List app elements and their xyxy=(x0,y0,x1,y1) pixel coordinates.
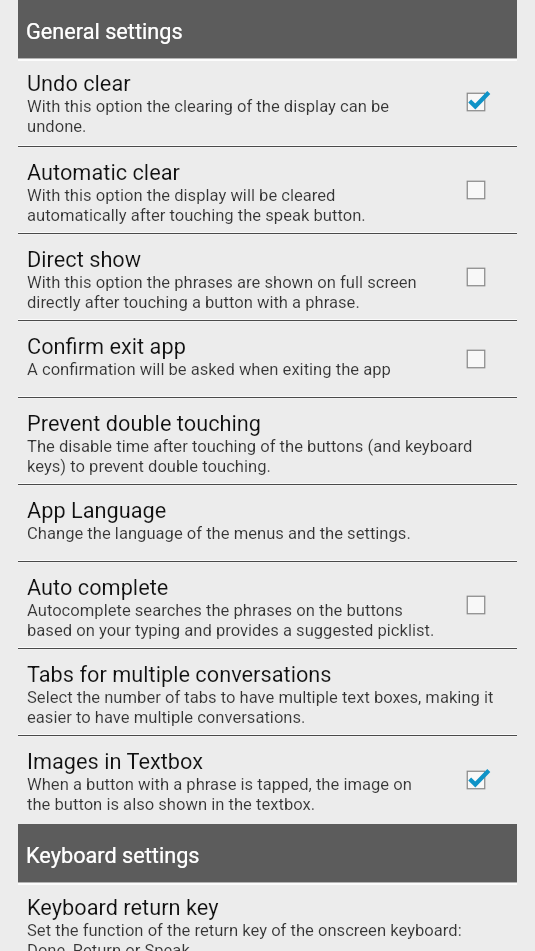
staticText: Automatic clear xyxy=(27,160,180,185)
button[interactable]: Images in Textbox, checked xyxy=(459,763,493,797)
staticText: Select the number of tabs to have multip… xyxy=(27,688,500,727)
button[interactable]: Auto complete, not checked xyxy=(459,588,493,622)
staticText: With this option the phrases are shown o… xyxy=(27,273,437,312)
button[interactable]: Automatic clear, not checked xyxy=(459,173,493,207)
staticText: Tabs for multiple conversations xyxy=(27,662,332,687)
button[interactable]: Undo clear xyxy=(18,58,517,146)
staticText: App Language xyxy=(27,498,167,523)
staticText: A confirmation will be asked when exitin… xyxy=(27,360,391,379)
staticText: Keyboard settings xyxy=(26,843,200,868)
staticText: Keyboard return key xyxy=(27,895,219,920)
staticText: Direct show xyxy=(27,247,142,272)
staticText: When a button with a phrase is tapped, t… xyxy=(27,775,437,814)
staticText: Confirm exit app xyxy=(27,334,186,359)
button[interactable]: Direct show xyxy=(18,234,517,320)
button[interactable]: Prevent double touching xyxy=(18,398,517,484)
button[interactable]: Direct show, not checked xyxy=(459,260,493,294)
staticText: Autocomplete searches the phrases on the… xyxy=(27,601,437,640)
button[interactable]: Undo clear, checked xyxy=(459,85,493,119)
staticText: Undo clear xyxy=(27,71,131,96)
button[interactable]: Auto complete xyxy=(18,562,517,648)
button[interactable]: Automatic clear xyxy=(18,147,517,233)
staticText: Auto complete xyxy=(27,575,169,600)
staticText: Change the language of the menus and the… xyxy=(27,524,411,543)
button[interactable]: Confirm exit app xyxy=(18,321,517,397)
button[interactable]: Tabs for multiple conversations xyxy=(18,649,517,735)
staticText: The disable time after touching of the b… xyxy=(27,437,500,476)
button[interactable]: Images in Textbox xyxy=(18,736,517,824)
staticText: General settings xyxy=(26,19,183,44)
staticText: Prevent double touching xyxy=(27,411,262,436)
staticText: Images in Textbox xyxy=(27,749,204,774)
staticText: With this option the clearing of the dis… xyxy=(27,97,437,136)
staticText: Set the function of the return key of th… xyxy=(27,921,500,951)
button[interactable]: Keyboard return key xyxy=(18,882,517,951)
staticText: With this option the display will be cle… xyxy=(27,186,437,225)
button[interactable]: App Language xyxy=(18,485,517,561)
button[interactable]: Confirm exit app, not checked xyxy=(459,342,493,376)
